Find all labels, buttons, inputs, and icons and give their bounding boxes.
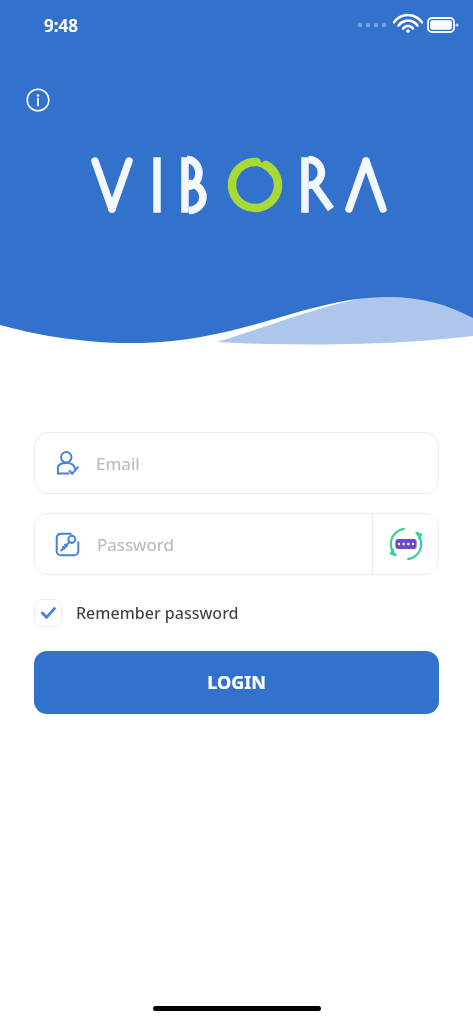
- staticText: LOGIN: [207, 670, 266, 695]
- button[interactable]: Email: [34, 432, 439, 494]
- staticText: Email: [96, 452, 140, 475]
- staticText: Password: [97, 533, 174, 556]
- button[interactable]: LOGIN: [34, 651, 439, 714]
- staticText: Remember password: [76, 602, 239, 624]
- button[interactable]: Information: [22, 84, 54, 116]
- button[interactable]: Password: [34, 513, 372, 575]
- button[interactable]: Generate password: [373, 513, 439, 575]
- button[interactable]: Remember password: [34, 597, 239, 629]
- staticText: 9:48: [44, 14, 78, 37]
